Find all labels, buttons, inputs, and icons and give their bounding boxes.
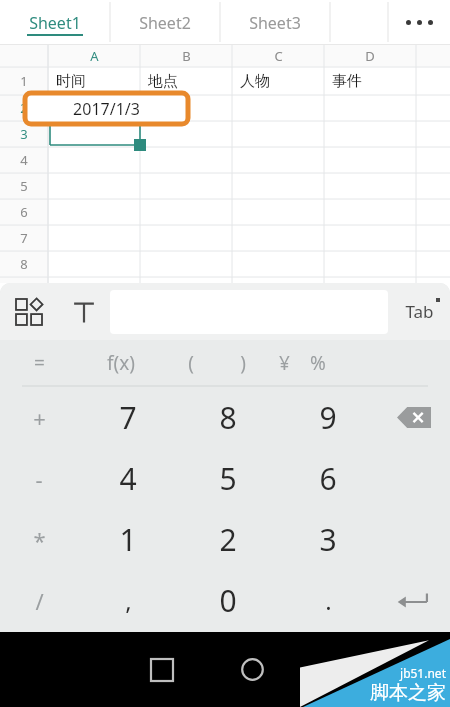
staticText: ¥ — [279, 350, 290, 376]
staticText: + — [33, 403, 46, 433]
staticText: 脚本之家 — [370, 681, 446, 705]
button[interactable]: f(x) — [79, 340, 162, 386]
staticText: 4 — [20, 151, 28, 169]
staticText: , — [125, 584, 132, 617]
staticText: * — [33, 525, 46, 555]
button[interactable]: Insert shape — [0, 283, 58, 340]
staticText: 0 — [219, 580, 237, 621]
staticText: Tab — [405, 300, 434, 323]
button[interactable]: % — [303, 340, 332, 386]
button[interactable]: , — [78, 570, 178, 631]
staticText: 地点 — [148, 72, 178, 91]
button[interactable]: * — [0, 509, 78, 570]
staticText: 事件 — [332, 72, 362, 91]
staticText: 2017/1/3 — [73, 98, 140, 120]
button[interactable]: - — [0, 448, 78, 509]
staticText: 7 — [119, 397, 137, 438]
button[interactable]: 4 — [78, 448, 178, 509]
button[interactable]: ( — [162, 340, 220, 386]
staticText: 8 — [20, 255, 28, 273]
staticText: Sheet3 — [249, 12, 301, 34]
staticText: ) — [240, 350, 246, 376]
staticText: 8 — [219, 397, 237, 438]
staticText: 3 — [319, 519, 337, 560]
button[interactable]: ) — [220, 340, 266, 386]
button[interactable]: More options — [388, 0, 450, 45]
button[interactable]: 2017/1/3 — [25, 93, 188, 124]
button[interactable]: Enter — [378, 570, 450, 631]
staticText: 1 — [119, 519, 137, 560]
button[interactable]: = — [0, 340, 79, 386]
button[interactable]: + — [0, 387, 78, 448]
staticText: 2 — [20, 99, 28, 117]
staticText: jb51.net — [400, 665, 446, 681]
staticText: - — [35, 464, 43, 494]
staticText: 7 — [20, 229, 28, 247]
button[interactable]: 2 — [178, 509, 278, 570]
button[interactable]: 3 — [278, 509, 378, 570]
button[interactable]: / — [0, 570, 78, 631]
staticText: 2 — [219, 519, 237, 560]
button[interactable]: Recent apps — [117, 632, 207, 707]
staticText: 9 — [319, 397, 337, 438]
staticText: B — [182, 47, 191, 65]
button[interactable]: 9 — [278, 387, 378, 448]
staticText: % — [310, 350, 326, 376]
staticText: . — [325, 584, 332, 617]
staticText: D — [365, 47, 375, 65]
staticText: 4 — [119, 458, 137, 499]
staticText: 人物 — [240, 72, 270, 91]
staticText: A — [90, 47, 99, 65]
button[interactable]: 7 — [78, 387, 178, 448]
button[interactable]: ¥ — [266, 340, 303, 386]
staticText: Sheet2 — [139, 12, 191, 34]
staticText: C — [274, 47, 283, 65]
staticText: / — [35, 586, 44, 616]
button[interactable]: 6 — [278, 448, 378, 509]
staticText: 5 — [20, 177, 28, 195]
staticText: = — [34, 350, 45, 376]
button[interactable]: Text format — [58, 283, 110, 340]
button[interactable]: Tab — [388, 283, 450, 340]
button[interactable]: Sheet1 — [0, 0, 110, 45]
button[interactable]: 0 — [178, 570, 278, 631]
staticText: 5 — [219, 458, 237, 499]
staticText: f(x) — [107, 350, 135, 376]
staticText: Sheet1 — [29, 12, 81, 34]
staticText: 6 — [20, 203, 28, 221]
button[interactable]: 1 — [78, 509, 178, 570]
button[interactable]: Sheet2 — [110, 0, 220, 45]
staticText: 6 — [319, 458, 337, 499]
button[interactable]: Backspace — [378, 387, 450, 448]
staticText: 1 — [20, 72, 28, 90]
button[interactable]: Sheet3 — [220, 0, 330, 45]
staticText: ( — [188, 350, 194, 376]
button[interactable]: Home — [207, 632, 297, 707]
button[interactable]: . — [278, 570, 378, 631]
button[interactable]: 8 — [178, 387, 278, 448]
staticText: 3 — [20, 125, 28, 143]
button[interactable]: 5 — [178, 448, 278, 509]
staticText: 时间 — [56, 72, 86, 91]
